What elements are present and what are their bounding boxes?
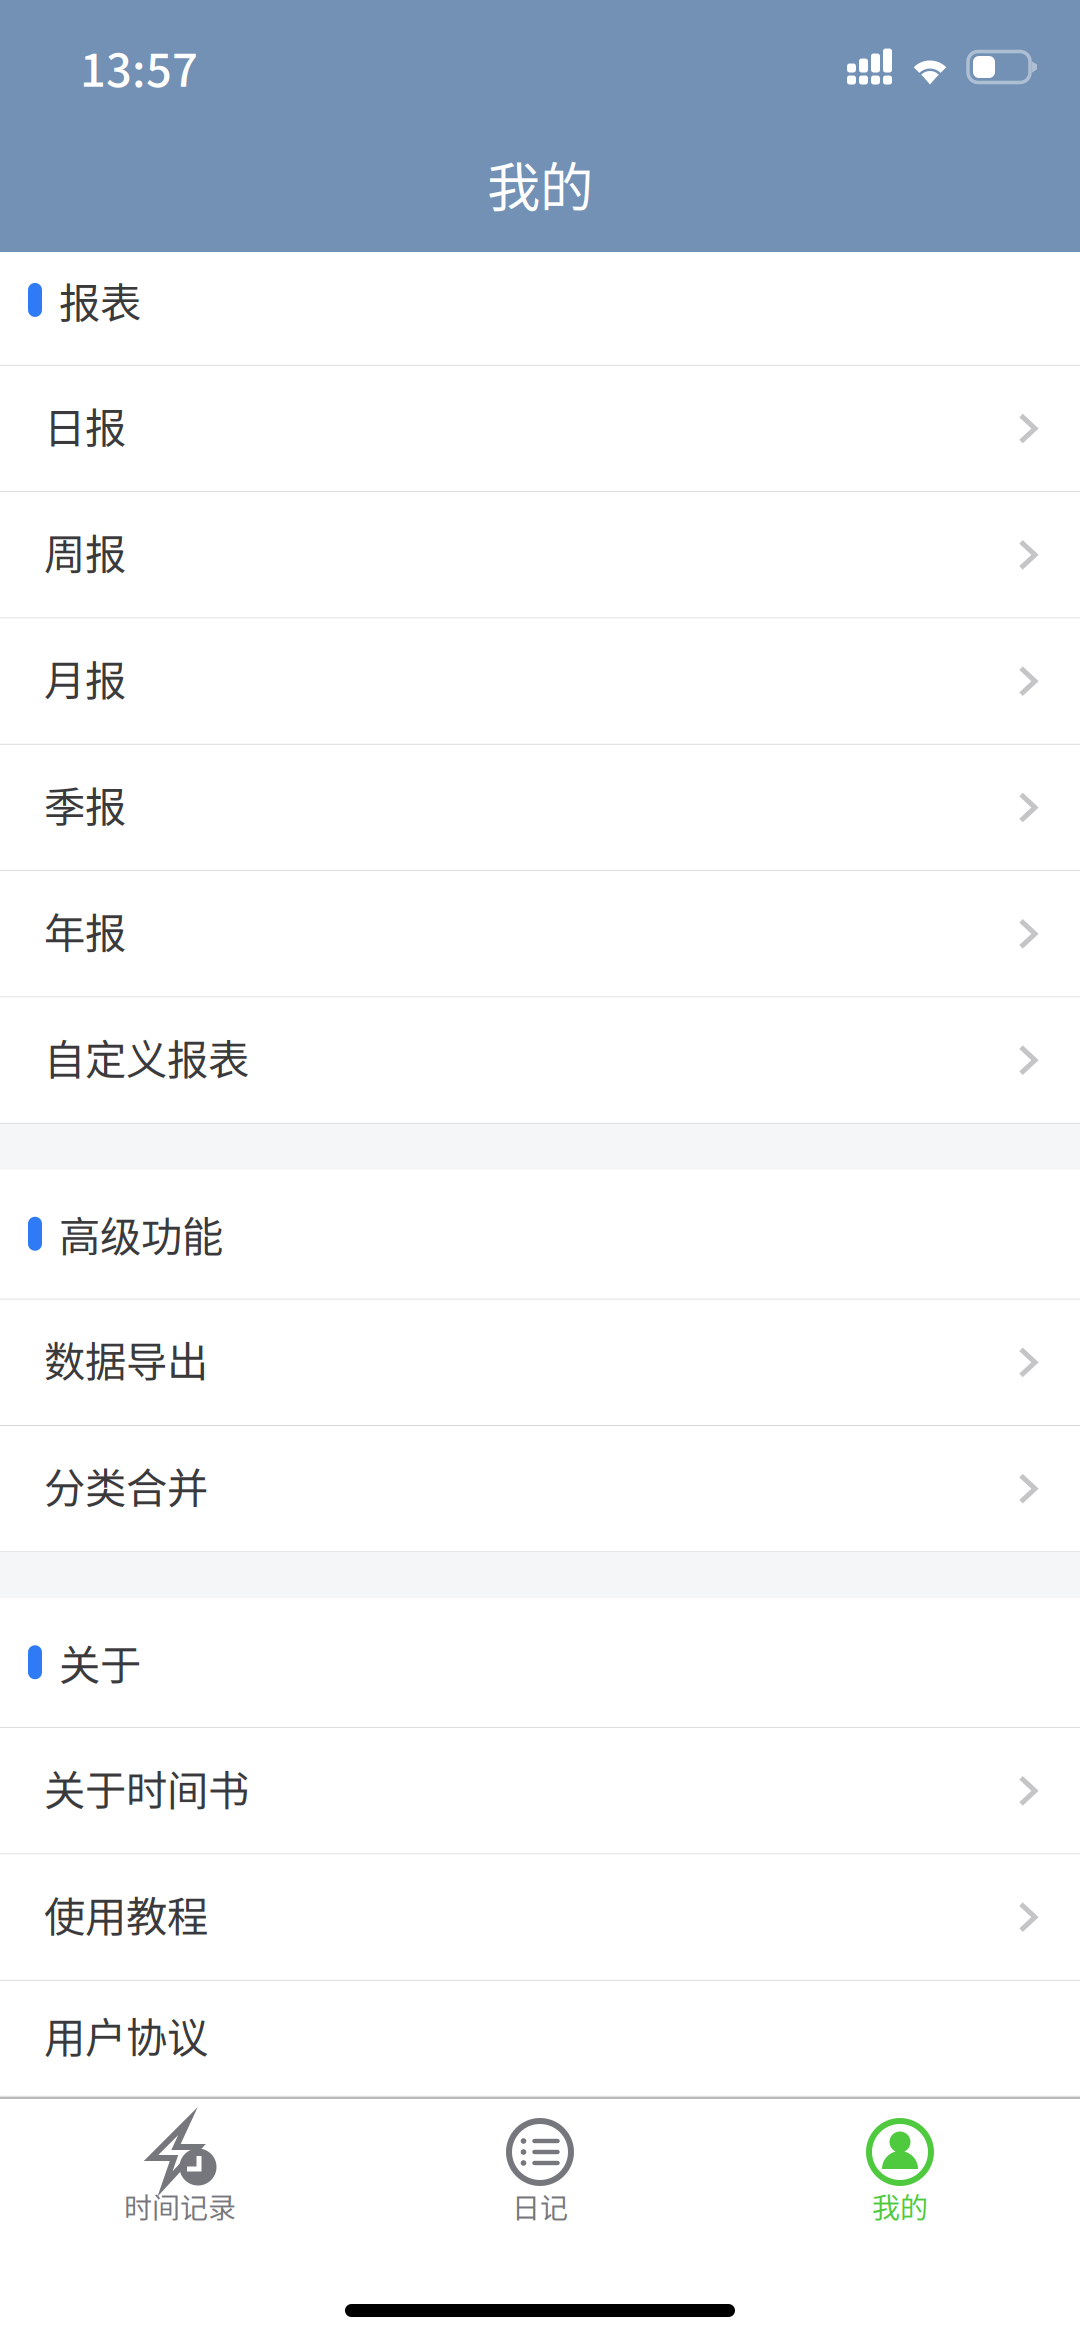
button[interactable]: 我的	[720, 2099, 1080, 2244]
staticText: 自定义报表	[44, 1027, 249, 1087]
staticText: 周报	[44, 521, 126, 581]
button[interactable]: 分类合并	[0, 1426, 1080, 1552]
staticText: 关于	[59, 1632, 141, 1692]
button[interactable]: 季报	[0, 745, 1080, 871]
staticText: 日报	[44, 395, 126, 455]
staticText: 年报	[44, 900, 126, 960]
staticText: 我的	[487, 145, 593, 223]
staticText: 关于时间书	[44, 1757, 249, 1817]
staticText: 用户协议	[44, 2005, 208, 2065]
staticText: 我的	[872, 2186, 928, 2226]
staticText: 日记	[512, 2186, 568, 2226]
staticText: 时间记录	[124, 2186, 236, 2226]
button[interactable]: 月报	[0, 618, 1080, 745]
button[interactable]: 年报	[0, 871, 1080, 997]
staticText: 报表	[59, 270, 141, 330]
button[interactable]: 时间记录	[0, 2099, 360, 2244]
button[interactable]: 日记	[360, 2099, 720, 2244]
staticText: 月报	[44, 648, 126, 708]
staticText: 使用教程	[44, 1884, 208, 1944]
button[interactable]: 周报	[0, 492, 1080, 618]
button[interactable]: 关于时间书	[0, 1728, 1080, 1854]
button[interactable]: 使用教程	[0, 1854, 1080, 1981]
button[interactable]: 自定义报表	[0, 997, 1080, 1124]
staticText: 分类合并	[44, 1455, 208, 1515]
staticText: 13:57	[80, 34, 198, 100]
staticText: 季报	[44, 774, 126, 834]
button[interactable]: 用户协议	[0, 1981, 1080, 2097]
button[interactable]: 日报	[0, 366, 1080, 492]
staticText: 高级功能	[59, 1204, 223, 1264]
staticText: 数据导出	[44, 1329, 208, 1389]
button[interactable]: 数据导出	[0, 1300, 1080, 1426]
